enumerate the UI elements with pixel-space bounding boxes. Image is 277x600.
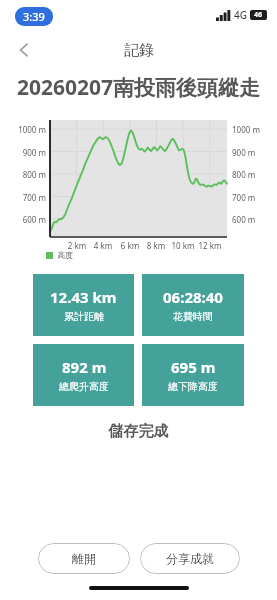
staticText: 花費時間 [173, 310, 213, 323]
button[interactable]: 695 m [142, 344, 244, 406]
staticText: 6 km [116, 240, 144, 251]
staticText: 20260207南投雨後頭縱走 [17, 73, 261, 102]
staticText: 10 km [169, 240, 197, 251]
staticText: 700 m [232, 192, 256, 203]
staticText: 記錄 [124, 41, 154, 60]
staticText: 900 m [232, 147, 256, 158]
staticText: 1000 m [12, 124, 46, 135]
staticText: 46 [254, 10, 263, 20]
staticText: 12 km [196, 240, 224, 251]
staticText: 2 km [63, 240, 91, 251]
staticText: 12.43 km [50, 287, 117, 307]
button[interactable]: 離開 [38, 543, 130, 574]
staticText: 06:28:40 [163, 287, 223, 307]
button[interactable]: Back [6, 32, 42, 68]
staticText: 4G [234, 8, 247, 22]
staticText: 4 km [89, 240, 117, 251]
button[interactable]: 分享成就 [140, 543, 240, 574]
staticText: 900 m [12, 147, 46, 158]
staticText: 695 m [171, 357, 216, 377]
staticText: 892 m [62, 357, 107, 377]
staticText: 總爬升高度 [59, 380, 109, 393]
staticText: 8 km [142, 240, 170, 251]
staticText: 分享成就 [166, 551, 214, 566]
staticText: 600 m [12, 214, 46, 225]
staticText: 總下降高度 [168, 380, 218, 393]
button[interactable]: 06:28:40 [142, 274, 244, 336]
staticText: 儲存完成 [0, 422, 277, 441]
staticText: 3:39 [23, 9, 45, 24]
button[interactable]: 892 m [33, 344, 134, 406]
staticText: 700 m [12, 192, 46, 203]
staticText: 累計距離 [64, 310, 104, 323]
button[interactable]: 12.43 km [33, 274, 134, 336]
staticText: 高度 [57, 250, 73, 260]
staticText: 800 m [232, 169, 256, 180]
staticText: 800 m [12, 169, 46, 180]
staticText: 600 m [232, 214, 256, 225]
staticText: 離開 [72, 551, 96, 566]
staticText: 1000 m [232, 124, 260, 135]
